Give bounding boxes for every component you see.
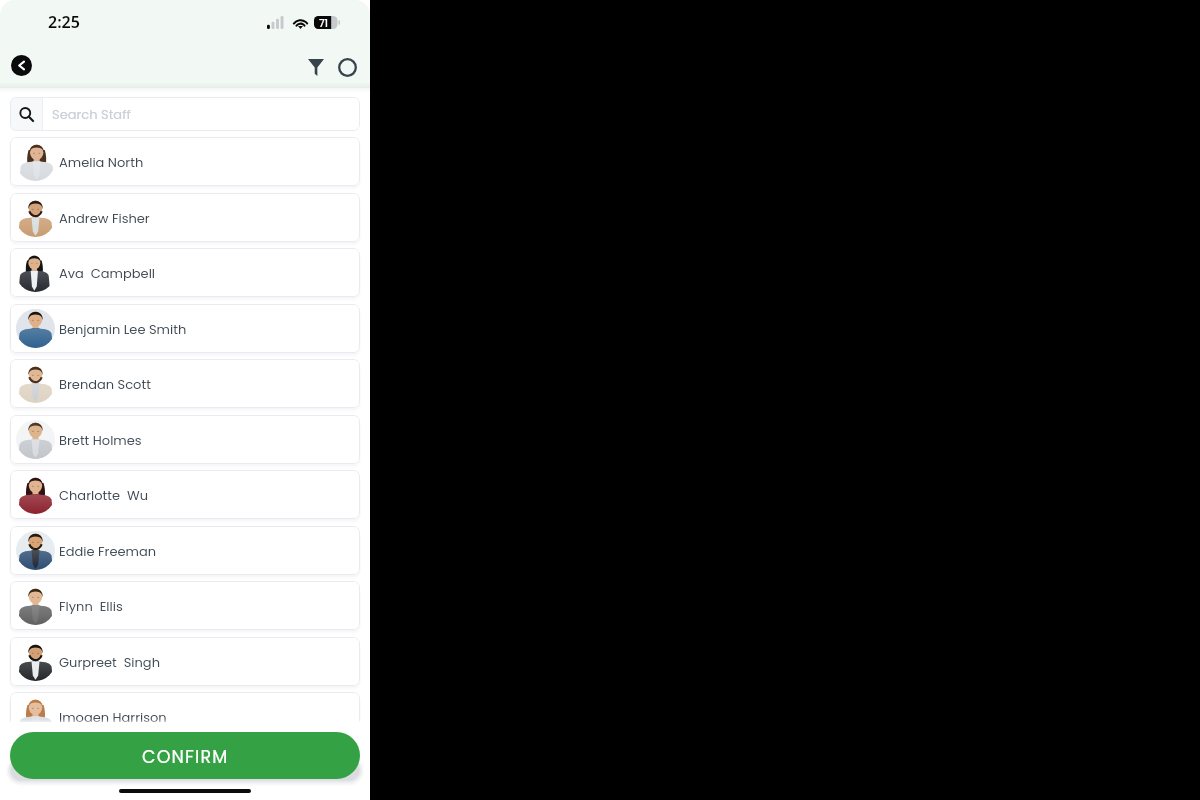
other: Brendan Scott photo <box>16 364 55 403</box>
button[interactable]: Amelia North photo <box>10 137 360 186</box>
staticText: Brett Holmes <box>59 431 142 449</box>
staticText: 2:25 <box>48 11 80 33</box>
staticText: Flynn Ellis <box>59 597 123 615</box>
staticText: Ava Campbell <box>59 264 156 282</box>
other: Flynn Ellis photo <box>16 586 55 625</box>
button[interactable]: Back <box>11 55 32 76</box>
staticText: Benjamin Lee Smith <box>59 320 187 338</box>
other: Ava Campbell photo <box>16 253 55 292</box>
button[interactable]: Flynn Ellis photo <box>10 581 360 630</box>
button[interactable]: Search Staff <box>10 97 360 131</box>
button[interactable]: CONFIRM <box>10 732 360 779</box>
staticText: 71 <box>319 16 329 28</box>
staticText: Imogen Harrison <box>59 708 167 723</box>
other: Andrew Fisher photo <box>16 198 55 237</box>
button[interactable]: Brendan Scott photo <box>10 359 360 408</box>
button[interactable]: Charlotte Wu photo <box>10 470 360 519</box>
staticText: Amelia North <box>59 153 144 171</box>
staticText: Andrew Fisher <box>59 209 150 227</box>
staticText: Search Staff <box>52 105 131 123</box>
staticText: CONFIRM <box>142 745 229 770</box>
staticText: Brendan Scott <box>59 375 151 393</box>
button[interactable]: Brett Holmes photo <box>10 415 360 464</box>
button[interactable]: Select all <box>334 54 360 80</box>
other: Gurpreet Singh photo <box>16 642 55 681</box>
other: Amelia North photo <box>16 142 55 181</box>
other: Benjamin Lee Smith photo <box>16 309 55 348</box>
button[interactable]: Ava Campbell photo <box>10 248 360 297</box>
staticText: Eddie Freeman <box>59 542 156 560</box>
other: Brett Holmes photo <box>16 420 55 459</box>
staticText: Gurpreet Singh <box>59 653 160 671</box>
other: Imogen Harrison photo <box>16 697 55 723</box>
other: Charlotte Wu photo <box>16 475 55 514</box>
button[interactable]: Filter <box>303 54 329 80</box>
button[interactable]: Gurpreet Singh photo <box>10 637 360 686</box>
other: Eddie Freeman photo <box>16 531 55 570</box>
staticText: Charlotte Wu <box>59 486 148 504</box>
button[interactable]: Andrew Fisher photo <box>10 193 360 242</box>
button[interactable]: Eddie Freeman photo <box>10 526 360 575</box>
button[interactable]: Imogen Harrison photo <box>10 692 360 723</box>
button[interactable]: Benjamin Lee Smith photo <box>10 304 360 353</box>
